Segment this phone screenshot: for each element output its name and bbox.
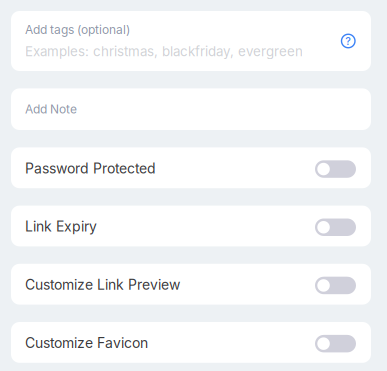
staticText: Examples: christmas, blackfriday, evergr… (25, 43, 303, 59)
button[interactable]: Customize Link Preview (11, 264, 371, 305)
staticText: ? (345, 34, 351, 47)
button[interactable]: Link Expiry (11, 206, 371, 246)
button[interactable]: Password Protected (11, 147, 371, 188)
staticText: Link Expiry (25, 218, 97, 235)
staticText: Password Protected (25, 160, 156, 177)
button[interactable]: Customize Favicon (11, 322, 371, 363)
staticText: Add tags (optional) (25, 22, 130, 37)
button[interactable]: Add tags (optional) (11, 11, 371, 71)
staticText: Customize Link Preview (25, 276, 180, 293)
staticText: Add Note (25, 102, 77, 116)
button[interactable]: Add Note (11, 88, 371, 130)
staticText: Customize Favicon (25, 334, 148, 351)
